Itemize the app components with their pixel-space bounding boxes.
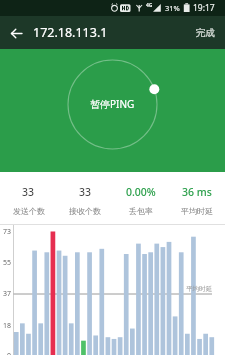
staticText: 36 ms (182, 185, 212, 199)
button[interactable]: 36 ms (169, 172, 225, 224)
staticText: 55 (0, 258, 11, 268)
staticText: 33 (79, 185, 92, 199)
staticText: 平均时延 (186, 285, 212, 293)
staticText: 0 (0, 351, 11, 355)
staticText: 0.00% (126, 185, 156, 199)
button[interactable]: 33 (0, 172, 57, 224)
staticText: 19:17 (193, 2, 215, 14)
staticText: 31% (165, 3, 180, 13)
staticText: 4G (146, 2, 153, 9)
staticText: 接收个数 (69, 206, 101, 216)
staticText: 37 (0, 289, 11, 299)
button[interactable]: 暂停PING (68, 59, 157, 148)
staticText: 丢包率 (129, 206, 153, 216)
staticText: 发送个数 (13, 206, 45, 216)
staticText: 172.18.113.1 (33, 24, 108, 41)
staticText: 暂停PING (90, 97, 135, 111)
button[interactable]: 完成 (186, 19, 225, 47)
staticText: 73 (0, 227, 11, 237)
staticText: 33 (22, 185, 35, 199)
button[interactable]: 33 (57, 172, 113, 224)
button[interactable]: 0.00% (113, 172, 169, 224)
staticText: 18 (0, 321, 11, 331)
staticText: 完成 (196, 27, 215, 39)
button[interactable] (3, 20, 29, 46)
staticText: 平均时延 (181, 206, 213, 216)
